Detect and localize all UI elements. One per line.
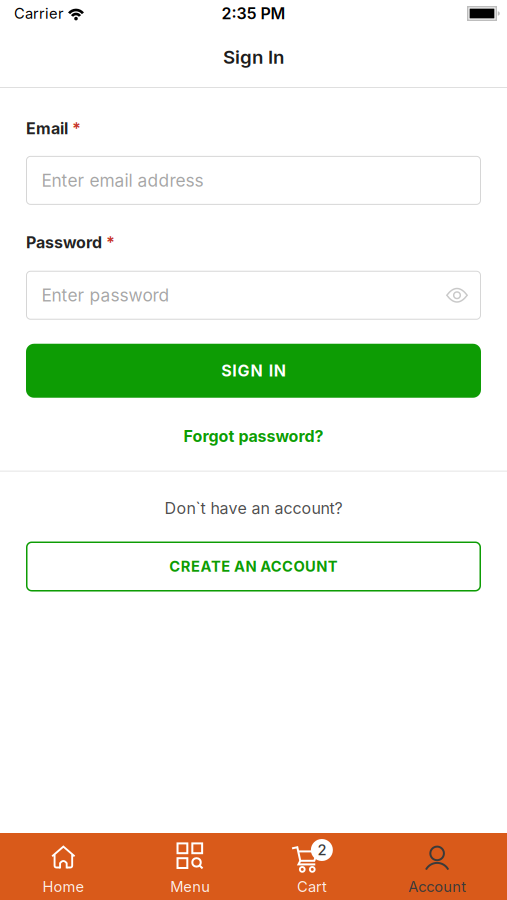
button[interactable]: Forgot password? (26, 427, 481, 446)
staticText: CREATE AN ACCOUNT (169, 558, 338, 575)
staticText: * (72, 119, 81, 138)
staticText: 2 (317, 841, 326, 859)
button[interactable]: 2 (253, 833, 380, 900)
button[interactable]: Enter email address (26, 156, 481, 205)
staticText: Sign In (223, 46, 284, 68)
staticText: Enter password (41, 285, 169, 305)
staticText: Carrier (14, 5, 64, 22)
button[interactable]: Show password (446, 287, 468, 303)
staticText: SIGN IN (221, 361, 286, 380)
button[interactable]: Enter password (26, 271, 481, 320)
staticText: Account (408, 878, 466, 895)
button[interactable]: Menu (127, 833, 254, 900)
button[interactable]: Account (380, 833, 507, 900)
staticText: Don`t have an account? (164, 499, 342, 517)
staticText: * (106, 233, 115, 252)
button[interactable]: SIGN IN (26, 344, 481, 398)
staticText: Menu (170, 878, 210, 895)
staticText: Home (42, 878, 84, 895)
button[interactable]: Home (0, 833, 127, 900)
staticText: Password (26, 233, 102, 252)
staticText: Email (26, 119, 68, 138)
button[interactable]: CREATE AN ACCOUNT (26, 541, 481, 591)
staticText: Enter email address (41, 170, 203, 191)
staticText: Forgot password? (183, 427, 323, 446)
staticText: 2:35 PM (221, 4, 285, 23)
staticText: Cart (297, 878, 327, 895)
